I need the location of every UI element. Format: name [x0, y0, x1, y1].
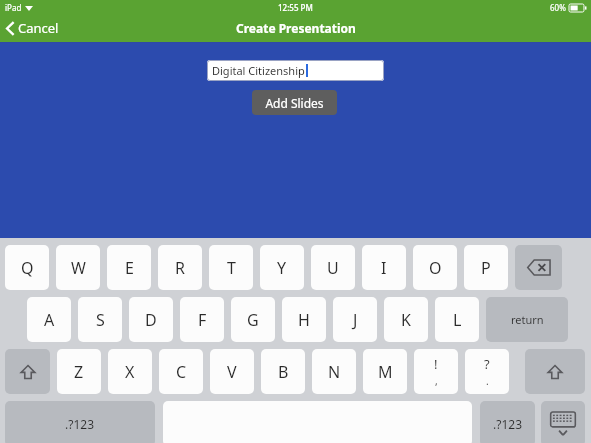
button[interactable]: F: [180, 297, 224, 342]
staticText: Q: [21, 257, 34, 279]
button[interactable]: ?: [465, 349, 509, 394]
staticText: Add Slides: [265, 95, 324, 111]
staticText: K: [401, 309, 411, 331]
button[interactable]: J: [333, 297, 377, 342]
staticText: C: [176, 361, 187, 383]
staticText: U: [327, 257, 339, 279]
button[interactable]: Shift: [5, 349, 50, 394]
button[interactable]: O: [413, 245, 457, 290]
button[interactable]: R: [158, 245, 202, 290]
staticText: iPad: [5, 2, 22, 13]
button[interactable]: K: [384, 297, 428, 342]
button[interactable]: L: [435, 297, 479, 342]
button[interactable]: Q: [5, 245, 49, 290]
button[interactable]: D: [129, 297, 173, 342]
staticText: R: [175, 257, 185, 279]
button[interactable]: !: [414, 349, 458, 394]
staticText: Digital Citizenship: [212, 63, 305, 78]
button[interactable]: X: [108, 349, 152, 394]
staticText: Create Presentation: [236, 20, 356, 36]
staticText: ?: [484, 355, 490, 373]
staticText: 60%: [550, 2, 566, 13]
staticText: L: [453, 309, 462, 331]
button[interactable]: N: [312, 349, 356, 394]
button[interactable]: C: [159, 349, 203, 394]
button[interactable]: W: [56, 245, 100, 290]
staticText: Z: [74, 361, 84, 383]
button[interactable]: H: [282, 297, 326, 342]
staticText: .?123: [493, 416, 523, 432]
staticText: I: [381, 257, 387, 279]
button[interactable]: .?123: [480, 401, 535, 443]
staticText: E: [125, 257, 134, 279]
button[interactable]: U: [311, 245, 355, 290]
staticText: N: [328, 361, 341, 383]
button[interactable]: Add Slides: [252, 90, 337, 115]
staticText: O: [429, 257, 442, 279]
staticText: H: [298, 309, 310, 331]
staticText: W: [71, 257, 86, 279]
button[interactable]: A: [27, 297, 71, 342]
button[interactable]: Digital Citizenship: [207, 60, 384, 81]
button[interactable]: return: [486, 297, 568, 342]
staticText: .?123: [65, 416, 95, 432]
staticText: ,: [435, 374, 438, 388]
button[interactable]: .?123: [5, 401, 155, 443]
button[interactable]: P: [464, 245, 508, 290]
button[interactable]: Shift: [525, 349, 585, 394]
staticText: X: [125, 361, 135, 383]
staticText: A: [44, 309, 55, 331]
staticText: G: [247, 309, 259, 331]
button[interactable]: Backspace: [515, 245, 562, 290]
button[interactable]: V: [210, 349, 254, 394]
staticText: return: [511, 312, 544, 327]
button[interactable]: Y: [260, 245, 304, 290]
staticText: .: [486, 374, 489, 388]
staticText: M: [378, 361, 393, 383]
staticText: 12:55 PM: [278, 2, 313, 13]
button[interactable]: B: [261, 349, 305, 394]
staticText: Y: [277, 257, 287, 279]
staticText: V: [227, 361, 237, 383]
button[interactable]: Cancel: [0, 15, 67, 41]
staticText: J: [353, 309, 358, 331]
staticText: !: [434, 355, 438, 373]
button[interactable]: Z: [57, 349, 101, 394]
button[interactable]: T: [209, 245, 253, 290]
staticText: S: [96, 309, 105, 331]
button[interactable]: Hide keyboard: [541, 401, 585, 443]
button[interactable]: M: [363, 349, 407, 394]
button[interactable]: S: [78, 297, 122, 342]
staticText: P: [481, 257, 491, 279]
staticText: B: [278, 361, 289, 383]
button[interactable]: I: [362, 245, 406, 290]
staticText: F: [198, 309, 207, 331]
staticText: T: [227, 257, 236, 279]
button[interactable]: E: [107, 245, 151, 290]
staticText: D: [145, 309, 157, 331]
staticText: Cancel: [18, 19, 59, 37]
button[interactable]: G: [231, 297, 275, 342]
